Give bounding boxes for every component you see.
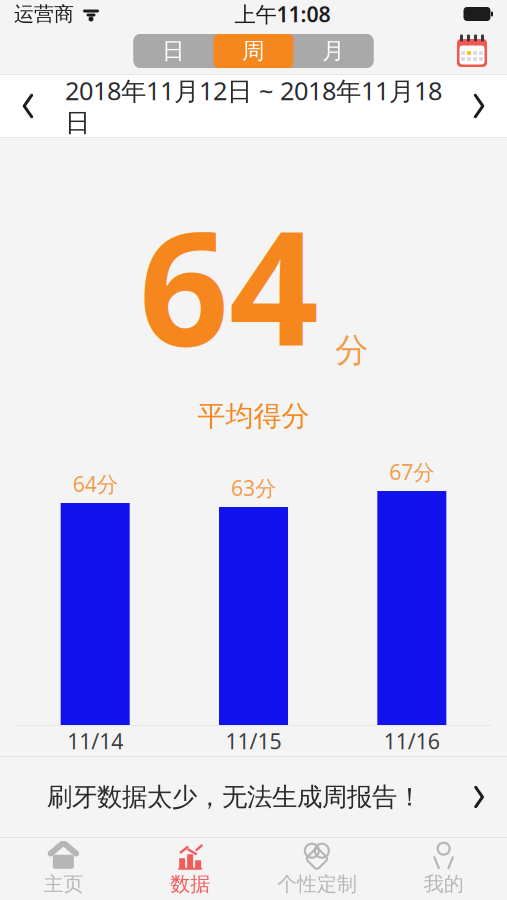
button[interactable]: 个性定制 [253, 838, 380, 900]
button[interactable]: 选择日期 [455, 34, 489, 68]
staticText: 我的 [424, 872, 464, 896]
staticText: 11/15 [225, 727, 281, 755]
staticText: 67分 [389, 458, 434, 486]
staticText: 个性定制 [277, 872, 357, 896]
staticText: 64 [139, 180, 319, 389]
button[interactable]: 刷牙数据太少，无法生成周报告！ [0, 757, 507, 837]
staticText: 平均得分 [197, 399, 309, 433]
button[interactable]: 月 [293, 34, 373, 68]
button[interactable]: 日 [133, 34, 213, 68]
staticText: 2018年11月12日 ~ 2018年11月18日 [65, 74, 442, 138]
staticText: 日 [162, 37, 185, 65]
button[interactable]: 主页 [0, 838, 127, 900]
staticText: 主页 [43, 872, 83, 896]
staticText: 运营商 [14, 2, 74, 26]
staticText: 11/16 [384, 727, 440, 755]
staticText: 11/14 [67, 727, 123, 755]
staticText: 刷牙数据太少，无法生成周报告！ [47, 781, 422, 812]
staticText: 数据 [170, 872, 210, 896]
staticText: 周 [242, 37, 265, 65]
staticText: 64分 [73, 470, 118, 498]
button[interactable]: 数据 [127, 838, 254, 900]
staticText: 月 [322, 37, 345, 65]
button[interactable]: 下一周 [451, 75, 507, 137]
button[interactable]: 周 [213, 34, 293, 68]
button[interactable]: 上一周 [0, 75, 56, 137]
staticText: 63分 [231, 474, 276, 502]
staticText: 分 [335, 330, 368, 371]
staticText: 上午11:08 [234, 0, 330, 28]
button[interactable]: 我的 [380, 838, 507, 900]
